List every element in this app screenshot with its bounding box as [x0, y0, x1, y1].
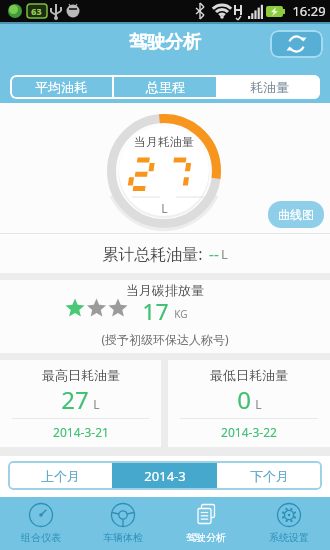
staticText: 总里程	[146, 79, 185, 95]
staticText: 系统设置	[269, 531, 309, 544]
button[interactable]: 平均油耗	[10, 75, 112, 99]
button[interactable]: 系统设置	[247, 497, 330, 550]
staticText: (授予初级环保达人称号)	[101, 331, 229, 347]
button[interactable]: 下个月	[217, 461, 322, 490]
staticText: L	[221, 245, 228, 263]
button[interactable]: 曲线图	[268, 201, 324, 228]
button[interactable]: 2014-3	[112, 461, 217, 490]
staticText: 平均油耗	[35, 79, 87, 95]
staticText: 63	[31, 5, 42, 17]
button[interactable]: 最低日耗油量	[168, 360, 330, 447]
staticText: 下个月	[250, 468, 289, 484]
staticText: L	[161, 200, 168, 216]
staticText: 当月耗油量	[134, 134, 194, 149]
staticText: 当月碳排放量	[126, 282, 204, 298]
button[interactable]: 车辆体检	[82, 497, 164, 550]
staticText: 27	[61, 383, 89, 416]
staticText: 驾驶分析	[129, 31, 201, 54]
staticText: 上个月	[41, 468, 80, 484]
staticText: 最高日耗油量	[42, 367, 120, 383]
staticText: L	[93, 396, 100, 412]
button[interactable]: 总里程	[114, 75, 216, 99]
staticText: 累计总耗油量:	[102, 243, 203, 265]
staticText: 2014-3-21	[53, 424, 109, 440]
staticText: 车辆体检	[103, 531, 143, 544]
button[interactable]: 最高日耗油量	[0, 360, 161, 447]
button[interactable]: 耗油量	[218, 75, 320, 99]
staticText: 16:29	[292, 2, 326, 20]
staticText: 0	[237, 383, 251, 416]
staticText: 2014-3-22	[221, 424, 277, 440]
button[interactable]	[270, 30, 323, 58]
staticText: L	[255, 396, 262, 412]
button[interactable]: 上个月	[8, 461, 112, 490]
staticText: 驾驶分析	[186, 531, 226, 544]
staticText: 最低日耗油量	[210, 367, 288, 383]
staticText: --	[203, 244, 221, 264]
button[interactable]: 驾驶分析	[164, 497, 247, 550]
staticText: 组合仪表	[21, 531, 61, 544]
staticText: KG	[174, 307, 188, 321]
button[interactable]: 组合仪表	[0, 497, 82, 550]
staticText: 耗油量	[250, 79, 289, 95]
staticText: 17	[142, 296, 169, 320]
staticText: 曲线图	[278, 207, 314, 222]
staticText: 2014-3	[144, 467, 186, 485]
